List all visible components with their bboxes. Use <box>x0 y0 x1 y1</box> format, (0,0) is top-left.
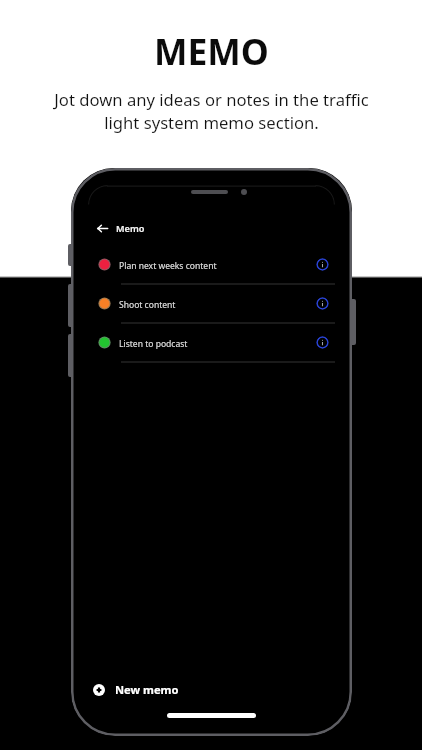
button[interactable]: Memo info <box>316 336 329 349</box>
button[interactable]: Listen to podcast <box>88 324 335 363</box>
staticText: Shoot content <box>119 299 176 311</box>
staticText: Jot down any ideas or notes in the traff… <box>54 88 369 134</box>
staticText: Memo <box>116 222 145 235</box>
button[interactable]: Memo info <box>316 258 329 271</box>
staticText: MEMO <box>154 27 269 75</box>
button[interactable]: Memo info <box>316 297 329 310</box>
staticText: New memo <box>115 682 179 697</box>
button[interactable]: Back <box>94 220 111 237</box>
button[interactable]: New memo <box>93 682 179 697</box>
button[interactable]: Shoot content <box>88 285 335 324</box>
staticText: Listen to podcast <box>119 338 188 350</box>
staticText: Plan next weeks content <box>119 260 217 272</box>
button[interactable]: Plan next weeks content <box>88 246 335 285</box>
